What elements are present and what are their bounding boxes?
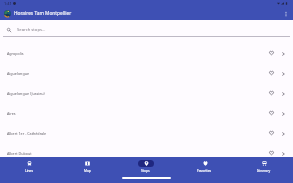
button[interactable]: Map (58, 157, 116, 172)
staticText: Lines (25, 168, 34, 172)
staticText: Albert Dubout (Nord) (7, 171, 265, 176)
button[interactable]: Add to favorites (265, 127, 277, 139)
button[interactable]: More options (280, 8, 291, 19)
staticText: Favorites (197, 168, 212, 172)
staticText: Albert 1er - Cathédrale (7, 131, 265, 136)
button[interactable]: Add to favorites (265, 87, 277, 99)
button[interactable]: Albert Dubout (0, 143, 293, 163)
staticText: 1:41 (4, 1, 12, 6)
button[interactable]: Stops (116, 157, 175, 172)
button[interactable]: Add to favorites (265, 147, 277, 159)
button[interactable]: Add to favorites (265, 167, 277, 179)
staticText: Agropolis (7, 51, 265, 56)
staticText: Aiguelongue (Jussieu) (7, 91, 265, 96)
staticText: Map (84, 168, 91, 172)
button[interactable]: Albert Dubout (Nord) (0, 163, 293, 183)
button[interactable]: Albert 1er - Cathédrale (0, 123, 293, 143)
staticText: Aires (7, 111, 265, 116)
staticText: Albert Dubout (7, 151, 265, 156)
button[interactable]: Aires (0, 103, 293, 123)
staticText: Itinerary (257, 168, 271, 172)
button[interactable]: Aiguelongue (0, 63, 293, 83)
button[interactable]: Aiguelongue (Jussieu) (0, 83, 293, 103)
button[interactable]: Add to favorites (265, 67, 277, 79)
button[interactable]: Itinerary (234, 157, 293, 172)
staticText: Search stops... (17, 27, 46, 33)
staticText: Horaires Tam Montpellier (14, 10, 72, 17)
button[interactable]: Add to favorites (265, 107, 277, 119)
button[interactable]: Search stops... (7, 21, 287, 39)
staticText: Aiguelongue (7, 71, 265, 76)
button[interactable]: Lines (0, 157, 58, 172)
button[interactable]: Agropolis (0, 43, 293, 63)
button[interactable]: Favorites (175, 157, 234, 172)
staticText: Stops (141, 168, 150, 172)
button[interactable]: Add to favorites (265, 47, 277, 59)
